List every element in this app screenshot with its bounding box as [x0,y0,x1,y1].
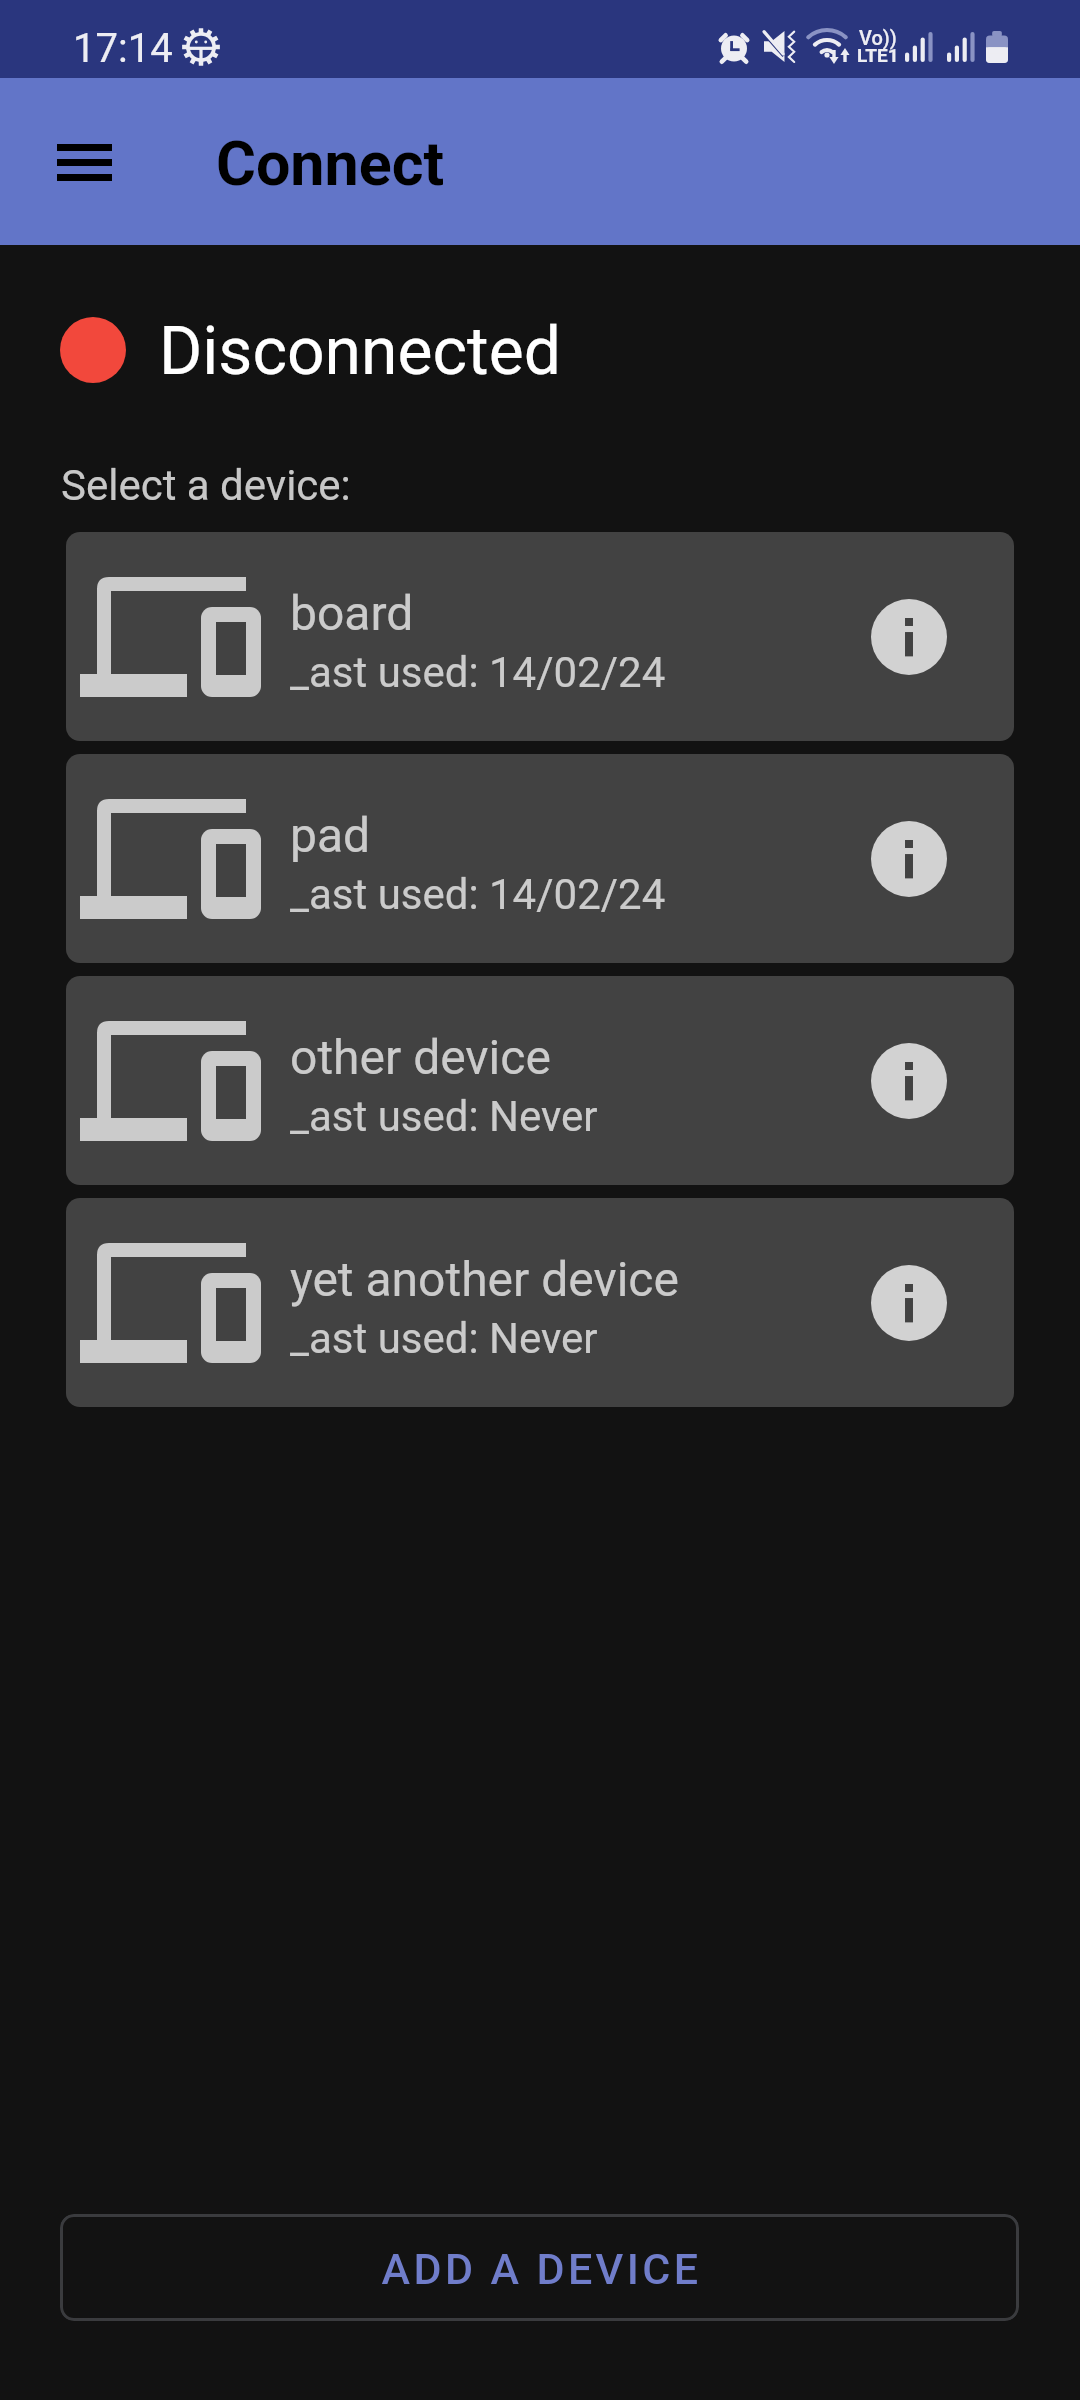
staticText: _ast used: 14/02/24 [290,648,666,697]
button[interactable]: Device info [863,1035,955,1127]
button[interactable]: pad [66,754,1014,963]
button[interactable]: Device info [863,813,955,905]
staticText: other device [290,1029,551,1085]
staticText: Disconnected [159,313,561,390]
button[interactable]: board [66,532,1014,741]
staticText: board [290,585,414,641]
staticText: _ast used: Never [290,1314,598,1363]
button[interactable]: ADD A DEVICE [60,2214,1019,2321]
staticText: yet another device [290,1251,679,1307]
staticText: Vo)) [859,26,897,49]
button[interactable]: Device info [863,1257,955,1349]
button[interactable]: Open navigation menu [29,107,139,217]
button[interactable]: Device info [863,591,955,683]
staticText: Select a device: [61,461,351,510]
button[interactable]: yet another device [66,1198,1014,1407]
staticText: ADD A DEVICE [381,2244,702,2294]
staticText: 17:14 [73,25,173,72]
staticText: _ast used: 14/02/24 [290,870,666,919]
staticText: LTE1 [857,44,899,66]
staticText: _ast used: Never [290,1092,598,1141]
button[interactable]: other device [66,976,1014,1185]
staticText: Connect [216,128,445,199]
staticText: pad [290,807,371,863]
